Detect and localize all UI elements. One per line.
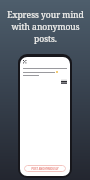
staticText: POST ANONYMOUSLY [31,167,59,171]
staticText: Express your mind [7,9,84,21]
button[interactable]: POST ANONYMOUSLY [24,165,66,172]
staticText: posts. [34,33,57,45]
staticText: with anonymous [11,21,80,33]
button[interactable]: App logo [23,60,27,64]
button[interactable]: Post image [61,79,67,84]
